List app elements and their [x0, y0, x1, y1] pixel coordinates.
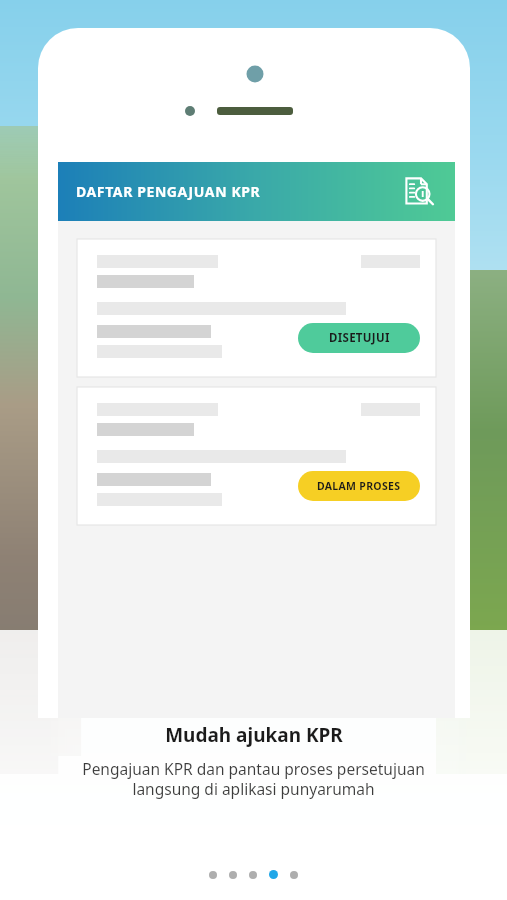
staticText: DAFTAR PENGAJUAN KPR — [76, 182, 261, 201]
staticText: Pengajuan KPR dan pantau proses persetuj… — [82, 758, 425, 800]
staticText: Mudah ajukan KPR — [165, 722, 343, 748]
button[interactable]: Page 5 — [290, 871, 298, 879]
staticText: DALAM PROSES — [317, 479, 401, 493]
button[interactable]: Page 3 — [249, 871, 257, 879]
button[interactable]: Page 1 — [209, 871, 217, 879]
button[interactable]: DALAM PROSES — [298, 471, 420, 501]
button[interactable]: DAFTAR PENGAJUAN KPR — [58, 162, 455, 221]
staticText: DISETUJUI — [329, 330, 390, 346]
button[interactable]: DISETUJUI — [298, 323, 420, 353]
button[interactable]: DISETUJUI — [77, 239, 436, 377]
button[interactable]: Page 2 — [229, 871, 237, 879]
button[interactable]: Search applications — [403, 175, 437, 209]
button[interactable]: Page 4 — [269, 870, 278, 879]
button[interactable]: DALAM PROSES — [77, 387, 436, 525]
